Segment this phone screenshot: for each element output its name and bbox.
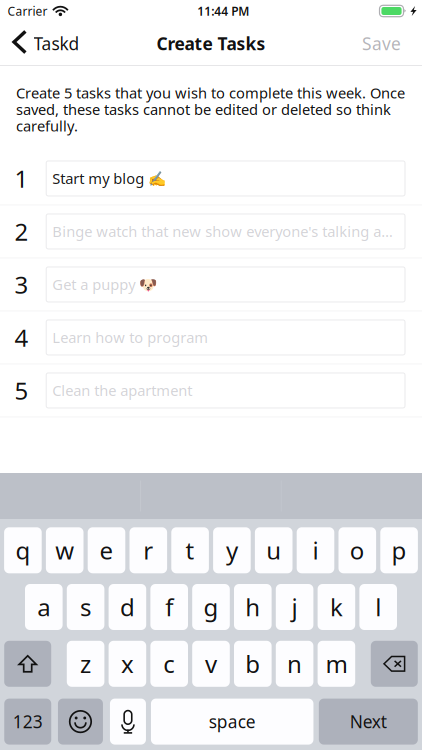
button[interactable]: i <box>297 527 334 573</box>
staticText: v <box>205 648 217 680</box>
button[interactable]: j <box>276 584 313 630</box>
staticText: w <box>55 534 74 566</box>
staticText: a <box>37 591 50 623</box>
button[interactable]: Learn how to program <box>46 320 405 355</box>
staticText: 11:44 PM <box>197 3 249 19</box>
button[interactable]: a <box>25 584 63 630</box>
staticText: 123 <box>13 710 43 733</box>
staticText: p <box>392 534 407 566</box>
button[interactable]: Save <box>348 22 422 65</box>
button[interactable]: u <box>255 527 292 573</box>
button[interactable]: k <box>318 584 355 630</box>
staticText: d <box>120 591 135 623</box>
button[interactable]: l <box>359 584 397 630</box>
staticText: e <box>99 534 113 566</box>
button[interactable]: p <box>380 527 418 573</box>
staticText: Start my blog ✍️ <box>52 169 166 188</box>
staticText: Create Tasks <box>156 32 265 55</box>
button[interactable]: y <box>213 527 251 573</box>
staticText: 3 <box>15 268 29 300</box>
button[interactable]: m <box>318 641 355 687</box>
staticText: n <box>287 648 302 680</box>
staticText: u <box>266 534 281 566</box>
staticText: 2 <box>15 215 29 247</box>
staticText: c <box>163 648 175 680</box>
staticText: g <box>203 591 218 623</box>
button[interactable]: f <box>150 584 188 630</box>
button[interactable]: Emoji <box>58 699 103 745</box>
staticText: y <box>226 534 238 566</box>
staticText: b <box>245 648 260 680</box>
staticText: space <box>209 710 256 733</box>
staticText: t <box>186 534 195 566</box>
staticText: Taskd <box>34 32 80 55</box>
staticText: l <box>375 591 381 623</box>
staticText: Carrier <box>7 3 47 19</box>
staticText: r <box>143 534 153 566</box>
button[interactable]: w <box>46 527 83 573</box>
staticText: Save <box>362 32 401 55</box>
staticText: z <box>80 648 91 680</box>
button[interactable]: space <box>151 699 313 745</box>
button[interactable]: o <box>338 527 376 573</box>
staticText: f <box>165 591 173 623</box>
button[interactable]: b <box>234 641 272 687</box>
button[interactable]: t <box>171 527 209 573</box>
staticText: o <box>350 534 365 566</box>
button[interactable]: Delete <box>371 641 418 687</box>
staticText: m <box>325 648 347 680</box>
staticText: Create 5 tasks that you wish to complete… <box>16 83 405 135</box>
button[interactable]: s <box>67 584 104 630</box>
button[interactable]: Start my blog ✍️ <box>46 161 405 196</box>
staticText: Next <box>350 710 387 733</box>
staticText: j <box>292 591 298 623</box>
button[interactable]: q <box>4 527 42 573</box>
button[interactable]: v <box>192 641 230 687</box>
button[interactable]: x <box>109 641 146 687</box>
staticText: k <box>330 591 343 623</box>
staticText: q <box>15 534 30 566</box>
staticText: Binge watch that new show everyone's tal… <box>52 222 399 241</box>
button[interactable]: g <box>192 584 230 630</box>
button[interactable]: Clean the apartment <box>46 373 405 408</box>
button[interactable]: Get a puppy 🐶 <box>46 267 405 302</box>
staticText: Learn how to program <box>52 328 208 347</box>
button[interactable]: Next <box>319 699 418 745</box>
staticText: 1 <box>15 162 29 194</box>
button[interactable]: Shift <box>4 641 51 687</box>
button[interactable]: Binge watch that new show everyone's tal… <box>46 214 405 249</box>
button[interactable]: r <box>129 527 167 573</box>
staticText: Clean the apartment <box>52 381 192 400</box>
staticText: i <box>312 534 318 566</box>
staticText: 4 <box>15 321 29 353</box>
button[interactable]: n <box>276 641 313 687</box>
button[interactable]: 123 <box>4 699 51 745</box>
staticText: x <box>121 648 134 680</box>
button[interactable]: z <box>67 641 104 687</box>
button[interactable]: Taskd <box>0 22 90 65</box>
staticText: 5 <box>15 374 29 406</box>
button[interactable]: Dictate <box>110 699 146 745</box>
staticText: Get a puppy 🐶 <box>52 275 157 294</box>
button[interactable]: d <box>109 584 146 630</box>
staticText: s <box>80 591 91 623</box>
button[interactable]: h <box>234 584 272 630</box>
button[interactable]: e <box>88 527 125 573</box>
button[interactable]: c <box>150 641 188 687</box>
staticText: h <box>245 591 260 623</box>
